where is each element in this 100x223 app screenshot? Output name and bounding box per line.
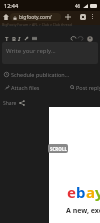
staticText: SCROLL [50, 146, 67, 152]
button[interactable]: Bold [9, 34, 18, 43]
button[interactable]: More options [88, 12, 97, 21]
staticText: I [18, 35, 21, 43]
staticText: BigFooty Forum > AFL > Club v Club threa… [2, 22, 72, 27]
staticText: a [86, 182, 95, 202]
button[interactable]: Post reply [70, 82, 100, 92]
staticText: bigfooty.com/forum/thre [19, 14, 61, 21]
staticText: 46 [75, 3, 81, 9]
button[interactable]: Write your reply... [2, 42, 98, 64]
button[interactable]: Account [85, 34, 94, 43]
staticText: b [76, 182, 86, 202]
staticText: B [12, 35, 16, 43]
button[interactable]: Attach files [4, 82, 40, 92]
button[interactable]: Share [3, 98, 25, 108]
button[interactable]: New tab [63, 12, 72, 21]
button[interactable]: Text format [2, 34, 11, 43]
staticText: T [5, 35, 9, 43]
button[interactable]: Italic [15, 34, 24, 43]
button[interactable]: Schedule publication... [4, 69, 70, 79]
staticText: Share [3, 100, 17, 107]
staticText: Attach files [11, 84, 40, 91]
button[interactable]: Tabs [78, 12, 87, 21]
staticText: e [67, 182, 76, 202]
button[interactable]: bigfooty.com/forum/thre [10, 13, 61, 21]
button[interactable]: Undo [69, 34, 78, 43]
button[interactable]: Insert link [22, 34, 31, 43]
staticText: Write your reply... [6, 47, 56, 55]
staticText: y [95, 182, 100, 202]
staticText: 12:44 [4, 2, 19, 9]
staticText: Post reply [76, 84, 100, 91]
button[interactable]: List [30, 34, 39, 43]
button[interactable]: SCROLL [48, 144, 68, 153]
button[interactable]: Home [1, 12, 10, 21]
staticText: A new, exciting [66, 206, 100, 216]
button[interactable]: Redo [76, 34, 85, 43]
staticText: Schedule publication... [11, 71, 70, 78]
